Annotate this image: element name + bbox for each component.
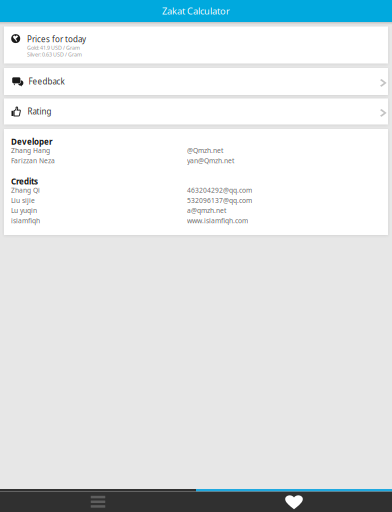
button[interactable]: Menu [0,491,196,512]
staticText: Lu yuqin [11,206,37,215]
staticText: yan@Qmzh.net [187,156,234,165]
staticText: Farizzan Neza [11,156,55,165]
staticText: Liu sijie [11,196,35,205]
staticText: @Qmzh.net [187,146,223,155]
staticText: Feedback [29,76,65,87]
staticText: a@qmzh.net [187,206,226,215]
staticText: 532096137@qq.com [187,196,252,205]
staticText: Zhang Hang [11,146,50,155]
staticText: 463204292@qq.com [187,186,252,195]
button[interactable]: Feedback [4,68,388,95]
staticText: Prices for today [27,34,86,44]
staticText: Rating [28,106,52,117]
button[interactable]: Favourites [196,491,392,512]
button[interactable]: Rating [4,98,388,124]
button[interactable]: Prices for today [4,26,388,63]
staticText: Silver: 0.63 USD / Gram [27,51,82,58]
staticText: Zakat Calculator [162,5,230,17]
staticText: Gold: 41.9 USD / Gram [27,44,80,51]
staticText: Credits [11,176,38,187]
staticText: Zhang Qi [11,186,40,195]
staticText: Developer [11,136,53,147]
staticText: islamfiqh [11,216,40,225]
staticText: www.islamfiqh.com [187,216,248,225]
